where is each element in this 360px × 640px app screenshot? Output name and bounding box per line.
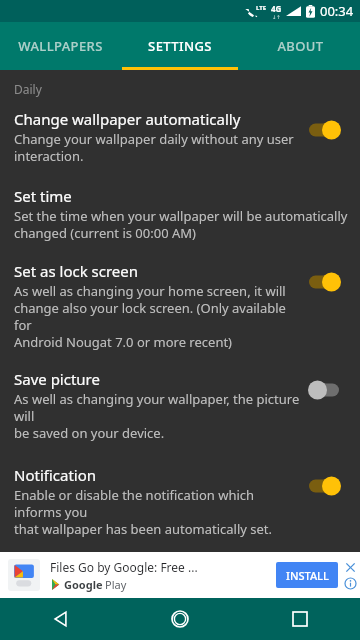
button[interactable]: Change wallpaper automatically — [0, 106, 360, 181]
staticText: Change your wallpaper daily without any … — [14, 130, 294, 165]
button[interactable]: Close ad — [344, 561, 357, 574]
staticText: As well as changing your home screen, it… — [14, 282, 302, 351]
button[interactable]: Save picture — [0, 364, 360, 460]
staticText: Files Go by Google: Free ... — [50, 559, 198, 575]
staticText: Enable or disable the notification which… — [14, 486, 302, 538]
button[interactable]: Toggle off — [306, 375, 352, 405]
button[interactable]: INSTALL — [276, 562, 338, 588]
staticText: Change wallpaper automatically — [14, 109, 241, 129]
staticText: Play — [105, 577, 127, 592]
button[interactable]: ABOUT — [240, 22, 360, 70]
staticText: As well as changing your wallpaper, the … — [14, 390, 302, 442]
staticText: Set time — [14, 186, 72, 206]
button[interactable]: Set as lock screen — [0, 256, 360, 364]
button[interactable]: WALLPAPERS — [0, 22, 120, 70]
staticText: Save picture — [14, 369, 100, 389]
button[interactable]: Recent apps — [240, 598, 360, 640]
staticText: Set the time when your wallpaper will be… — [14, 207, 348, 242]
button[interactable]: Toggle on — [306, 115, 352, 145]
button[interactable]: Ad info — [344, 577, 357, 590]
button[interactable]: Toggle on — [306, 267, 352, 297]
staticText: Google — [64, 577, 103, 592]
button[interactable]: Set time — [0, 181, 360, 256]
staticText: LTE — [256, 4, 267, 12]
staticText: INSTALL — [286, 568, 329, 583]
button[interactable]: Files Go by Google: Free ... — [0, 552, 360, 598]
staticText: 4G — [271, 3, 282, 14]
button[interactable]: Toggle on — [306, 471, 352, 501]
button[interactable]: Back — [0, 598, 120, 640]
button[interactable]: SETTINGS — [120, 22, 240, 70]
button[interactable]: Home — [120, 598, 240, 640]
staticText: Set as lock screen — [14, 261, 139, 281]
staticText: Daily — [14, 81, 42, 97]
button[interactable]: Notification — [0, 460, 360, 548]
staticText: WALLPAPERS — [18, 37, 103, 55]
staticText: Notification — [14, 465, 97, 485]
staticText: ABOUT — [277, 37, 324, 55]
staticText: 00:34 — [320, 2, 354, 20]
staticText: ↓↑ — [272, 14, 281, 20]
staticText: SETTINGS — [148, 37, 212, 55]
